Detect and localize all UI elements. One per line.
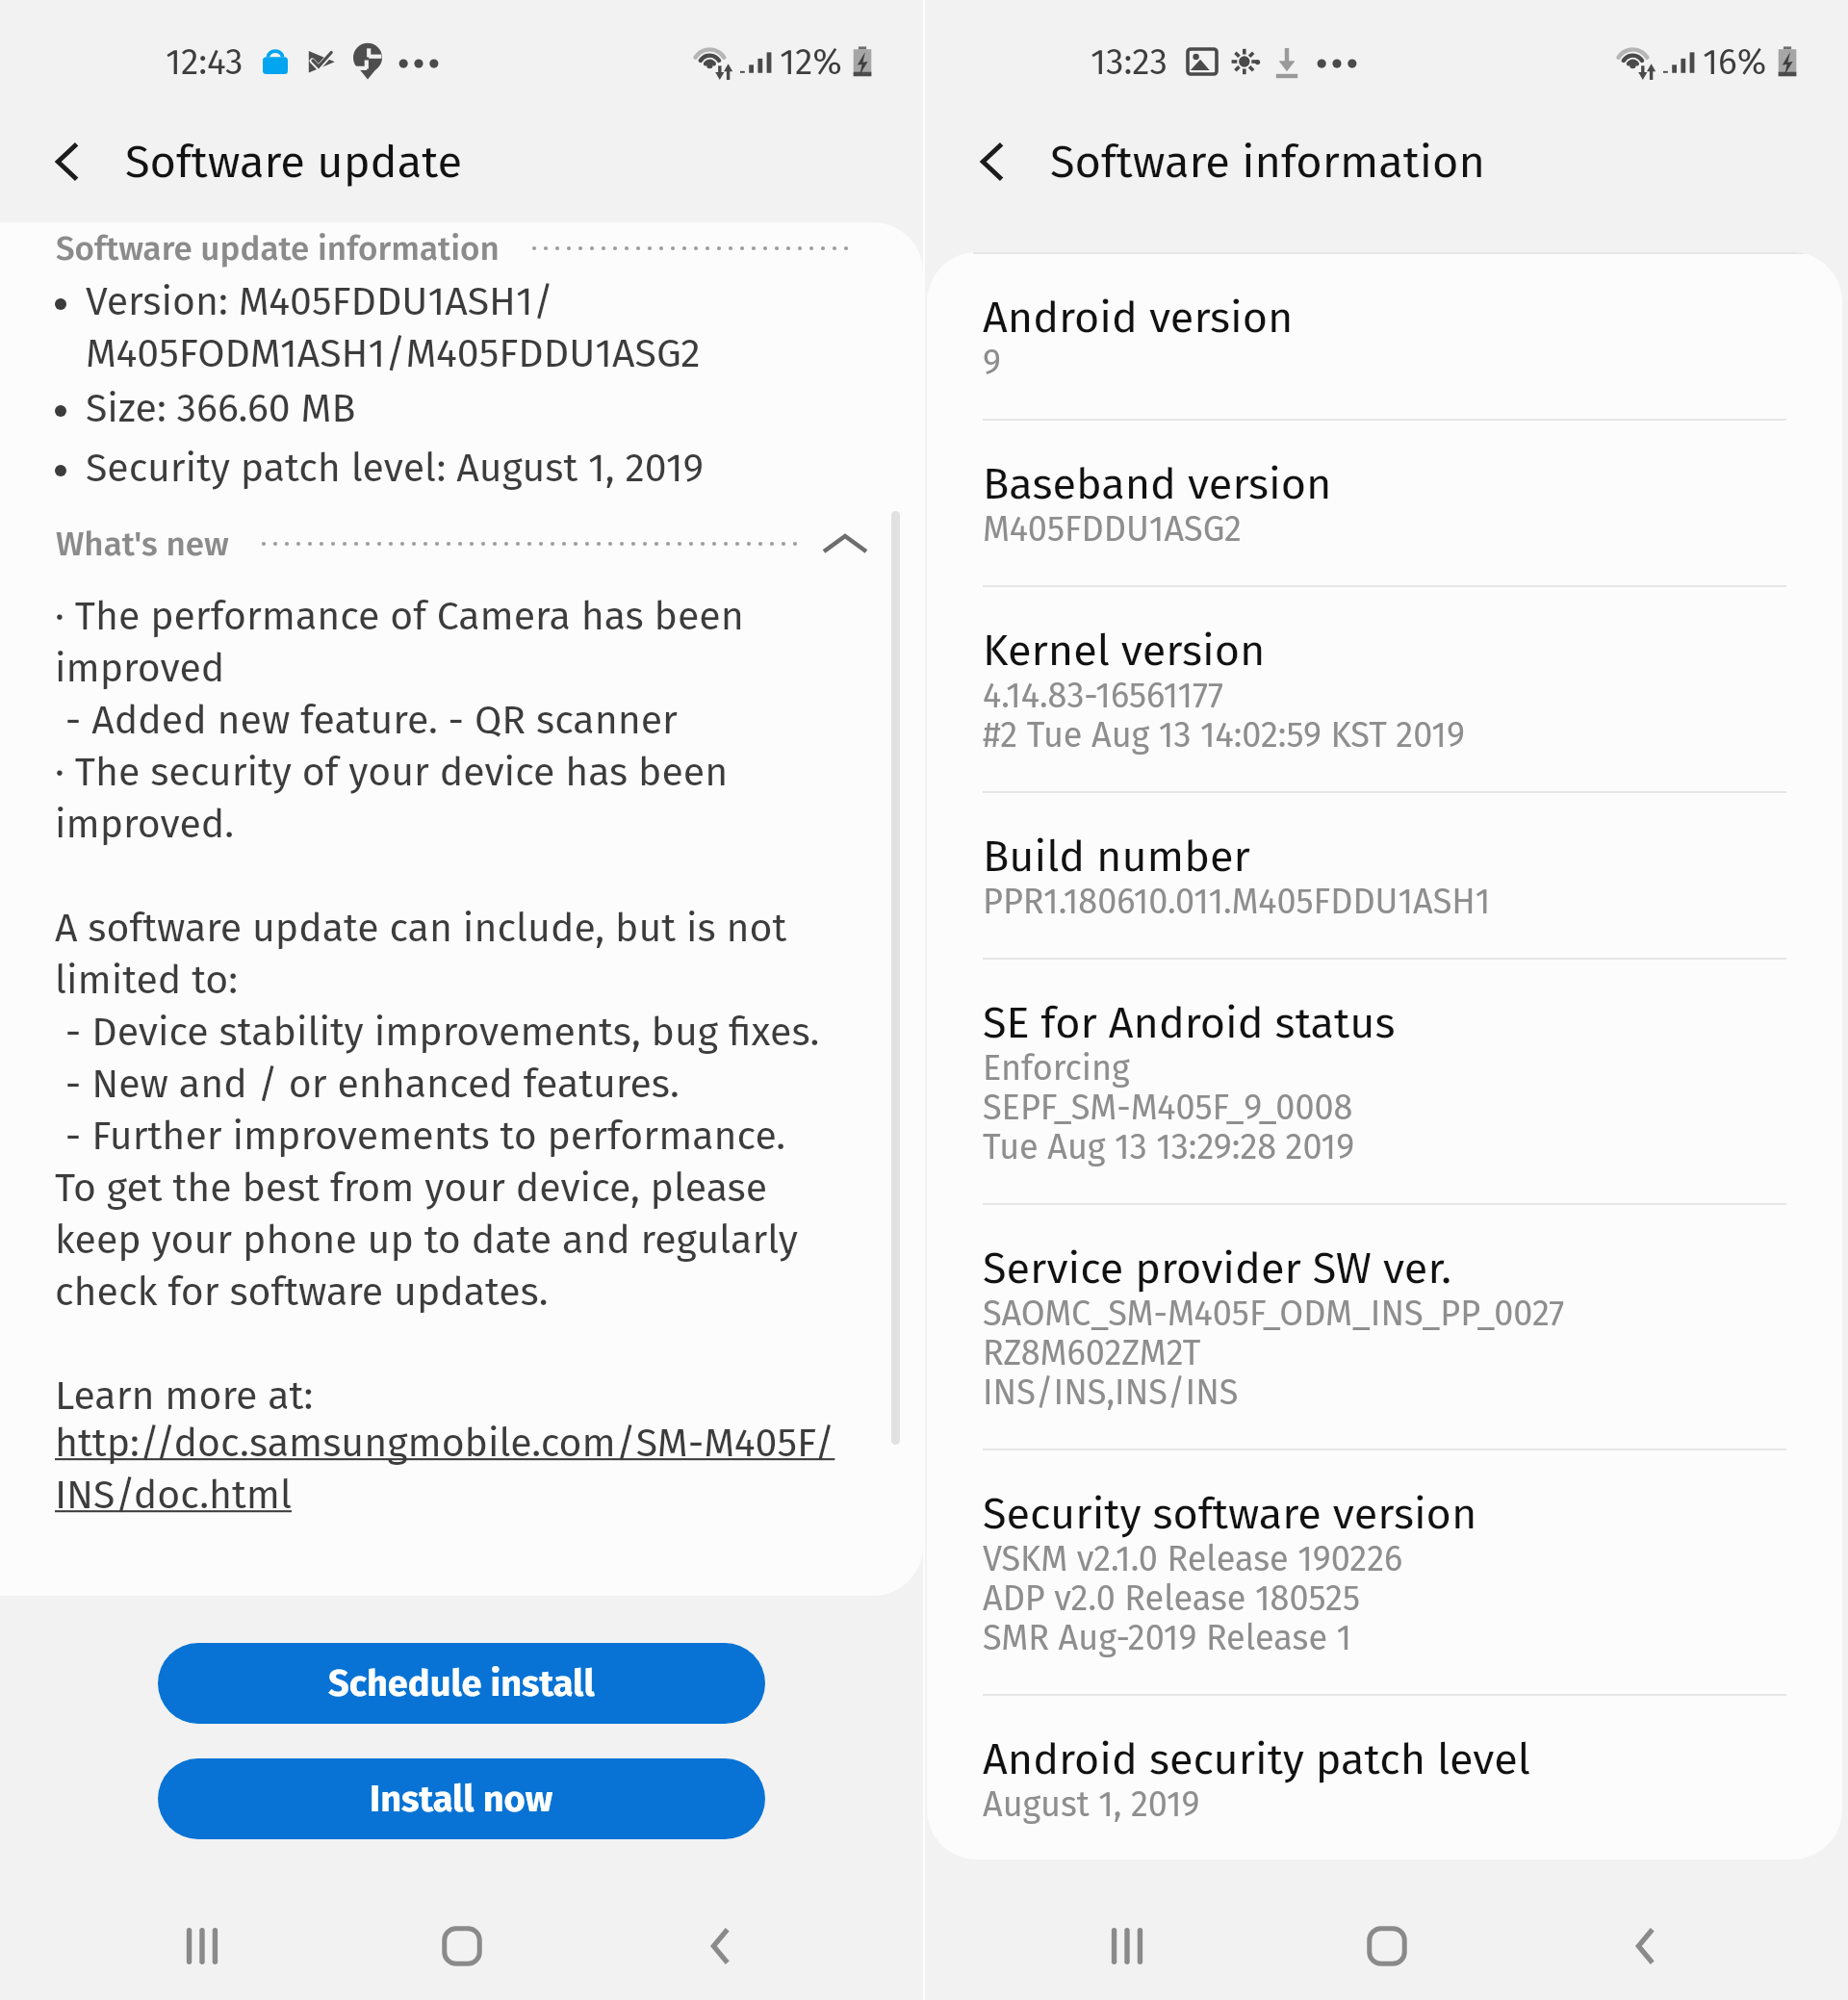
staticText: Enforcing SEPF_SM-M405F_9_0008 Tue Aug 1… [983,1047,1355,1167]
button[interactable]: Android security patch level [983,1696,1786,1859]
staticText: 12:43 [166,40,244,83]
button[interactable]: Navigate up [925,108,1050,215]
button[interactable]: Kernel version [983,587,1786,793]
button[interactable]: Recent apps [1069,1888,1185,2000]
staticText: Install now [370,1777,553,1821]
button[interactable]: Back [663,1888,779,2000]
staticText: Size: 366.60 MB [86,385,356,432]
button[interactable]: Schedule install [158,1643,765,1724]
staticText: 16% [1703,40,1767,83]
staticText: Service provider SW ver. [983,1243,1451,1295]
staticText: 9 [983,342,1001,383]
staticText: Android security patch level [983,1733,1530,1785]
button[interactable]: Collapse [816,518,874,570]
staticText: Kernel version [983,625,1266,677]
button[interactable]: SE for Android status [983,960,1786,1205]
button[interactable]: Recent apps [144,1888,260,2000]
button[interactable]: Android version [983,252,1786,421]
staticText: Software update [125,135,463,189]
staticText: Software information [1050,135,1485,189]
staticText: SE for Android status [983,997,1396,1049]
button[interactable]: Service provider SW ver. [983,1205,1786,1450]
staticText: 12% [780,40,842,83]
staticText: Build number [983,831,1250,883]
staticText: Schedule install [328,1661,595,1705]
staticText: Version: M405FDDU1ASH1/ M405FODM1ASH1/M4… [86,278,701,377]
button[interactable]: Baseband version [983,421,1786,587]
staticText: Security patch level: August 1, 2019 [86,445,704,492]
staticText: August 1, 2019 [983,1783,1200,1825]
staticText: · The performance of Camera has been imp… [55,593,854,1420]
button[interactable]: Install now [158,1758,765,1839]
staticText: 4.14.83-16561177 #2 Tue Aug 13 14:02:59 … [983,675,1465,756]
button[interactable]: Build number [983,793,1786,960]
staticText: What's new [56,524,229,564]
staticText: M405FDDU1ASG2 [983,508,1242,550]
staticText: Android version [983,292,1294,344]
staticText: http://doc.samsungmobile.com/SM-M405F/IN… [55,1420,854,1519]
button[interactable]: Navigate up [0,108,125,215]
staticText: Security software version [983,1488,1477,1540]
staticText: 13:23 [1091,40,1168,83]
staticText: SAOMC_SM-M405F_ODM_INS_PP_0027 RZ8M602ZM… [983,1293,1565,1413]
staticText: Software update information [56,228,500,269]
staticText: PPR1.180610.011.M405FDDU1ASH1 [983,881,1491,922]
staticText: Baseband version [983,458,1332,510]
staticText: VSKM v2.1.0 Release 190226 ADP v2.0 Rele… [983,1538,1403,1658]
button[interactable]: Home [1329,1888,1445,2000]
button[interactable]: Home [404,1888,520,2000]
button[interactable]: Back [1588,1888,1704,2000]
button[interactable]: Security software version [983,1450,1786,1696]
